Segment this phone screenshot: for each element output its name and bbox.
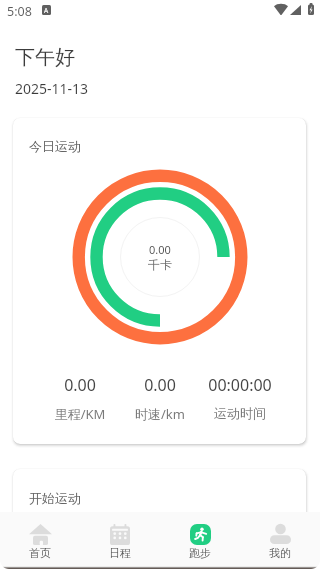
staticText: A	[44, 6, 49, 15]
staticText: 千卡	[148, 257, 172, 272]
staticText: 日程	[109, 546, 131, 560]
staticText: 0.00	[110, 374, 210, 396]
staticText: 下午好	[15, 45, 75, 70]
staticText: 跑步	[189, 546, 211, 560]
other: Home	[29, 524, 52, 545]
staticText: 开始运动	[29, 490, 81, 506]
staticText: 时速/km	[110, 405, 210, 423]
button[interactable]: Run	[160, 512, 240, 569]
button[interactable]: 开始运动	[13, 469, 306, 559]
staticText: 今日运动	[29, 138, 81, 154]
button[interactable]: Schedule	[80, 512, 160, 569]
staticText: 00:00:00	[190, 374, 290, 396]
staticText: 0.00	[30, 374, 130, 396]
staticText: 0.00	[149, 242, 171, 257]
other: Profile	[270, 524, 291, 544]
other: Run	[190, 524, 211, 545]
other: Schedule	[110, 524, 130, 545]
staticText: 里程/KM	[30, 405, 130, 423]
button[interactable]: Profile	[240, 512, 320, 569]
staticText: 2025-11-13	[15, 79, 89, 98]
staticText: 运动时间	[190, 405, 290, 421]
staticText: 首页	[29, 546, 51, 560]
staticText: 我的	[269, 546, 291, 560]
button[interactable]: Home	[0, 512, 80, 569]
staticText: 5:08	[7, 3, 32, 20]
